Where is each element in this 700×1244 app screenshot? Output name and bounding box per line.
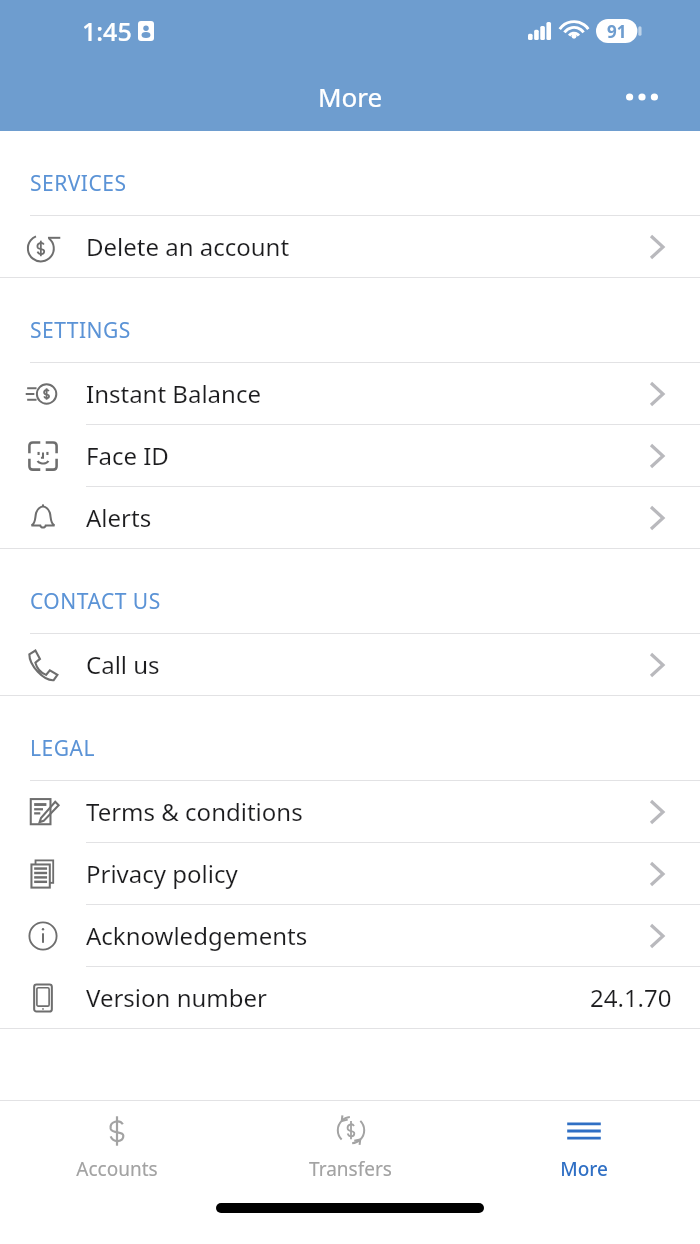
button[interactable]: Privacy policy [0,843,700,904]
button[interactable]: Acknowledgements [0,905,700,966]
staticText: Transfers [309,1156,392,1182]
staticText: 91 [607,20,627,43]
staticText: Instant Balance [86,377,261,410]
staticText: Terms & conditions [86,795,303,828]
staticText: CONTACT US [30,587,161,616]
staticText: Call us [86,648,160,681]
staticText: Accounts [76,1156,158,1182]
staticText: Face ID [86,439,169,472]
staticText: SERVICES [30,169,127,198]
staticText: Acknowledgements [86,919,308,952]
staticText: SETTINGS [30,316,131,345]
button[interactable]: More [467,1101,700,1191]
staticText: Delete an account [86,230,290,263]
staticText: Alerts [86,501,152,534]
button[interactable]: More options [614,69,670,125]
staticText: 1:45 [82,14,132,48]
staticText: Version number [86,981,267,1014]
button[interactable]: Transfers [234,1101,467,1191]
staticText: 24.1.70 [590,981,672,1014]
staticText: LEGAL [30,734,95,763]
staticText: Privacy policy [86,857,238,890]
button[interactable]: Delete an account [0,216,700,277]
button[interactable]: Call us [0,634,700,695]
button[interactable]: Face ID [0,425,700,486]
button[interactable]: Instant Balance [0,363,700,424]
staticText: More [560,1156,608,1182]
button[interactable]: Accounts [0,1101,234,1191]
button[interactable]: Terms & conditions [0,781,700,842]
button[interactable]: Alerts [0,487,700,548]
button[interactable]: Version number [0,967,700,1028]
staticText: More [318,79,383,114]
